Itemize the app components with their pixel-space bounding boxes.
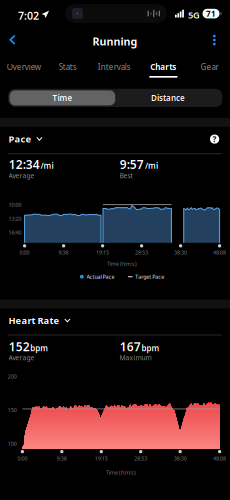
- staticText: 12:34: [9, 156, 40, 172]
- staticText: 9:38: [59, 249, 69, 256]
- staticText: Running: [92, 34, 137, 48]
- staticText: 38:30: [174, 249, 187, 256]
- staticText: 28:53: [135, 249, 148, 256]
- staticText: Target Pace: [135, 273, 164, 280]
- button[interactable]: Charts: [144, 52, 183, 80]
- staticText: 5G: [188, 9, 200, 21]
- staticText: Stats: [59, 62, 77, 72]
- button[interactable]: Stats: [54, 52, 82, 80]
- staticText: Gear: [201, 62, 219, 72]
- button[interactable]: More options: [204, 29, 225, 51]
- staticText: 71: [206, 8, 216, 19]
- staticText: 10:00: [8, 201, 21, 208]
- button[interactable]: Back: [0, 29, 25, 51]
- staticText: 13:20: [8, 215, 21, 222]
- staticText: 19:15: [95, 455, 108, 462]
- staticText: Average: [9, 171, 35, 180]
- staticText: 167: [120, 339, 141, 354]
- staticText: ?: [213, 134, 217, 144]
- staticText: Time (h:m:s): [106, 469, 136, 476]
- button[interactable]: Pace: [0, 129, 49, 149]
- button[interactable]: Overview: [0, 52, 47, 80]
- staticText: 0:00: [17, 455, 27, 462]
- button[interactable]: Time: [10, 90, 115, 105]
- staticText: 0:00: [20, 249, 30, 256]
- staticText: 150: [8, 406, 17, 414]
- staticText: Distance: [151, 93, 185, 103]
- staticText: Pace: [9, 133, 32, 145]
- staticText: Overview: [7, 62, 41, 72]
- staticText: Best: [120, 171, 133, 180]
- staticText: 7:02: [18, 9, 39, 23]
- staticText: 48:08: [213, 455, 226, 462]
- staticText: 9:38: [57, 455, 67, 462]
- staticText: 48:08: [213, 249, 226, 256]
- staticText: 100: [8, 440, 17, 447]
- button[interactable]: Heart Rate: [0, 310, 77, 331]
- button[interactable]: Intervals: [92, 52, 136, 80]
- staticText: Intervals: [98, 62, 131, 72]
- staticText: 9:57: [120, 156, 144, 172]
- staticText: bpm: [30, 343, 48, 353]
- staticText: /mi: [40, 160, 53, 171]
- staticText: /mi: [145, 160, 158, 171]
- staticText: Time (h:m:s): [107, 260, 137, 267]
- staticText: 152: [9, 339, 30, 354]
- staticText: 200: [8, 373, 17, 380]
- staticText: Heart Rate: [9, 314, 60, 327]
- staticText: Average: [9, 353, 35, 362]
- staticText: bpm: [141, 343, 159, 353]
- button[interactable]: Distance: [115, 90, 221, 105]
- button[interactable]: Gear: [195, 52, 225, 80]
- staticText: 28:53: [134, 455, 147, 462]
- staticText: Time: [52, 93, 72, 103]
- button[interactable]: About Pace: [207, 131, 222, 147]
- staticText: Actual Pace: [86, 273, 114, 280]
- staticText: Maximum: [120, 353, 152, 362]
- staticText: 16:40: [8, 229, 21, 236]
- staticText: Charts: [150, 62, 176, 72]
- staticText: 38:30: [174, 455, 187, 462]
- staticText: 19:15: [96, 249, 109, 256]
